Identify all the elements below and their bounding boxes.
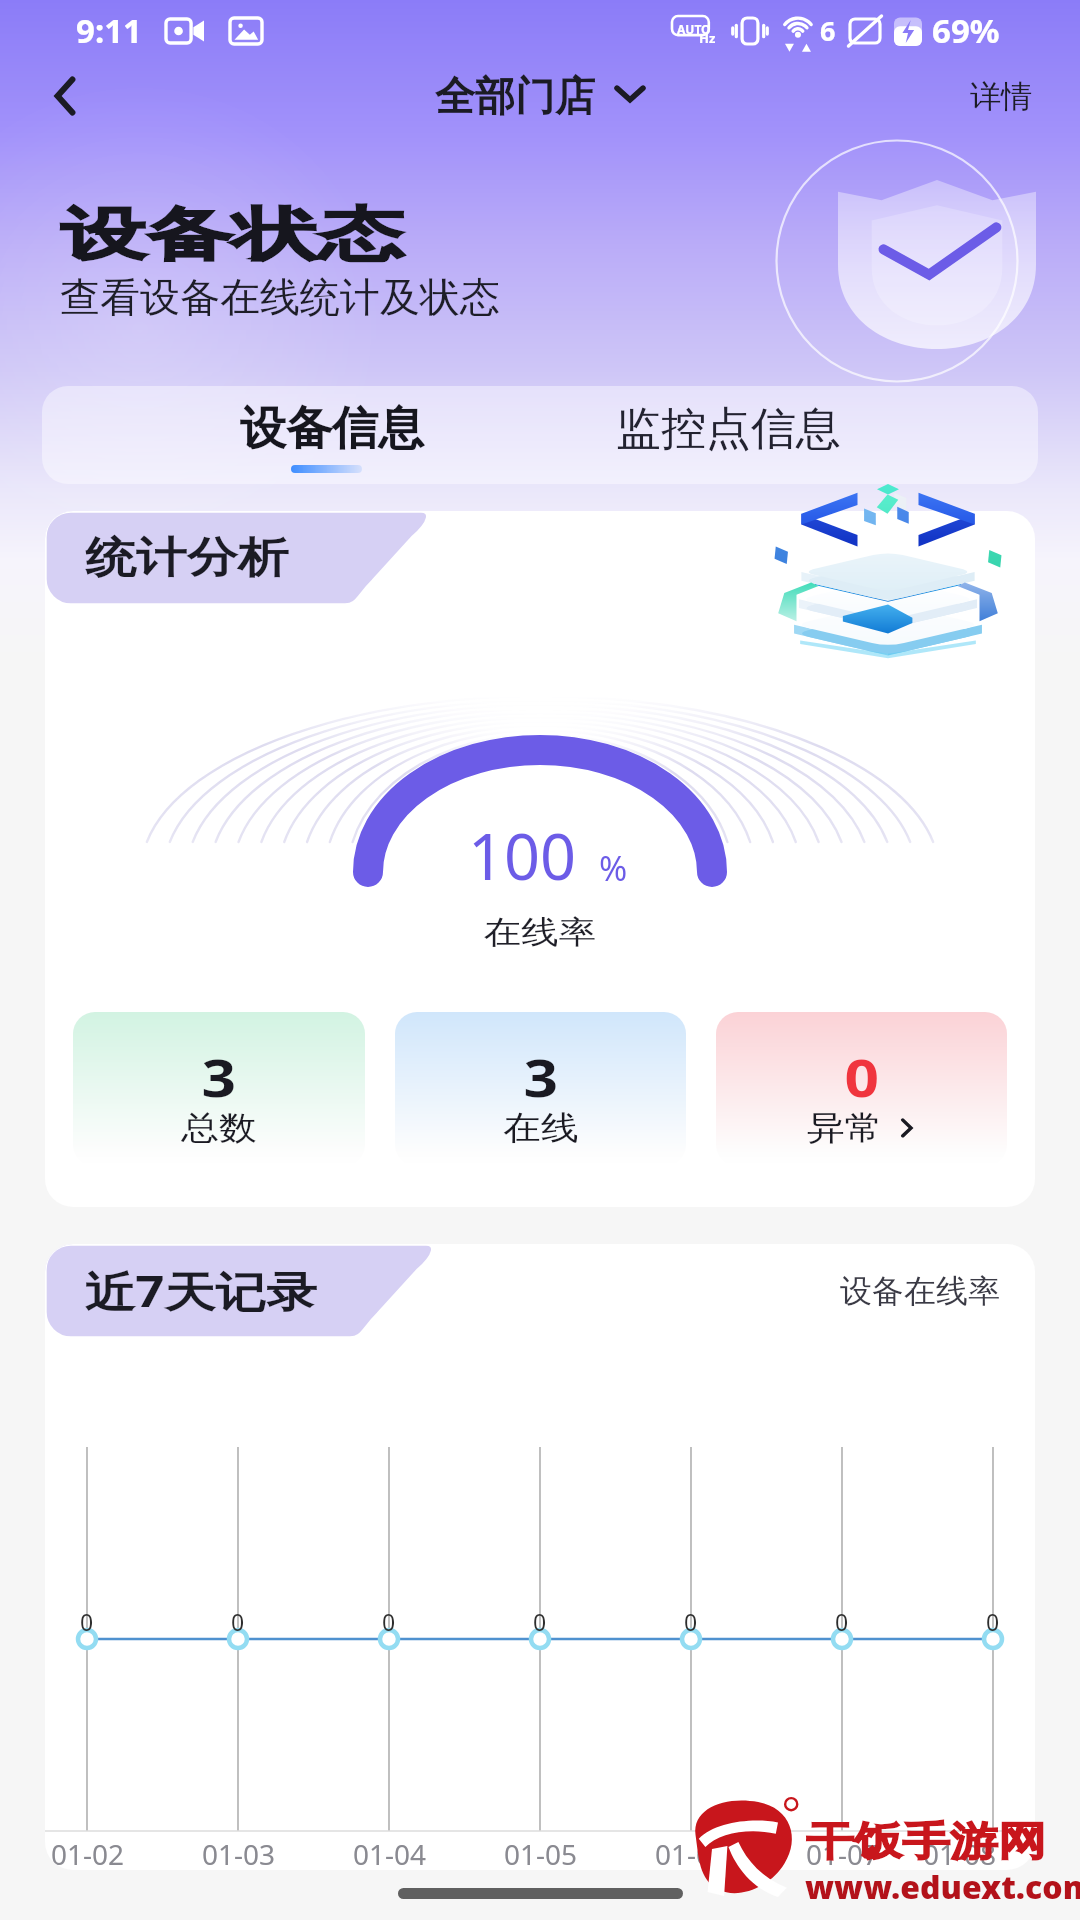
staticText: 查看设备在线统计及状态 xyxy=(60,272,500,322)
staticText: 近7天记录 xyxy=(84,1262,318,1320)
button[interactable]: 3 xyxy=(73,1012,365,1166)
staticText: 0 xyxy=(231,1606,245,1637)
button[interactable]: 0 xyxy=(716,1012,1007,1166)
staticText: 异常 xyxy=(807,1107,882,1148)
staticText: 6 xyxy=(820,12,836,49)
staticText: 0 xyxy=(986,1606,1000,1637)
staticText: 在线 xyxy=(503,1107,579,1148)
staticText: 01-02 xyxy=(51,1835,125,1870)
staticText: 01-07 xyxy=(806,1835,880,1870)
staticText: 01-03 xyxy=(202,1835,276,1870)
staticText: 干饭手游网 xyxy=(806,1817,1046,1867)
staticText: 0 xyxy=(80,1606,94,1637)
staticText: 3 xyxy=(202,1041,236,1112)
staticText: 总数 xyxy=(181,1107,257,1148)
staticText: % xyxy=(599,845,628,891)
staticText: AUTO xyxy=(677,21,711,37)
staticText: www.eduext.com xyxy=(805,1866,1080,1908)
staticText: 01-08 xyxy=(923,1835,997,1870)
staticText: 0 xyxy=(533,1606,547,1637)
staticText: 01-05 xyxy=(504,1835,578,1870)
staticText: 详情 xyxy=(970,77,1032,116)
button[interactable]: 监控点信息 xyxy=(588,386,868,484)
button[interactable]: 设备信息 xyxy=(202,386,462,484)
staticText: 设备在线率 xyxy=(840,1271,1000,1311)
staticText: 100 xyxy=(468,813,577,899)
staticText: 在线率 xyxy=(484,912,596,951)
button[interactable]: 详情 xyxy=(966,71,1036,122)
button[interactable]: Back xyxy=(32,65,94,127)
staticText: 0 xyxy=(835,1606,849,1637)
staticText: 3 xyxy=(524,1041,558,1112)
staticText: 0 xyxy=(684,1606,698,1637)
staticText: Hz xyxy=(699,29,716,47)
staticText: 0 xyxy=(845,1041,879,1112)
staticText: 69% xyxy=(932,8,1000,53)
staticText: 0 xyxy=(382,1606,396,1637)
staticText: 统计分析 xyxy=(85,532,289,584)
staticText: 设备状态 xyxy=(61,199,404,270)
staticText: 监控点信息 xyxy=(616,401,841,458)
staticText: 设备信息 xyxy=(240,400,424,458)
staticText: 01-06 xyxy=(655,1835,729,1870)
button[interactable]: 3 xyxy=(395,1012,686,1166)
staticText: 9:11 xyxy=(76,8,142,53)
staticText: 01-04 xyxy=(353,1835,427,1870)
button[interactable]: 全部门店 xyxy=(427,65,653,127)
staticText: 全部门店 xyxy=(435,71,595,121)
